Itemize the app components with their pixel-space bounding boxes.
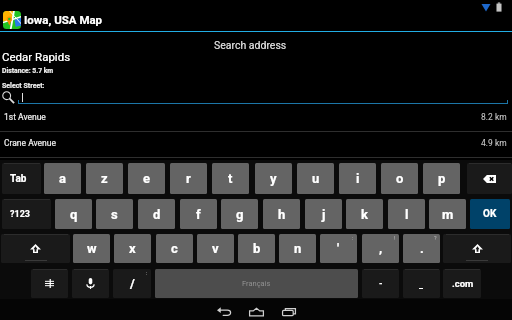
button[interactable]: Voice input [72,269,109,298]
staticText: w [87,241,97,256]
button[interactable]: 1st Avenue [0,104,512,129]
staticText: p [438,171,446,186]
staticText: Iowa, USA Map [24,13,103,26]
button[interactable]: i [339,163,376,194]
staticText: Cedar Rapids [2,50,71,63]
button[interactable]: Recent apps [272,301,305,320]
staticText: .com [452,278,474,289]
button[interactable]: y [255,163,292,194]
staticText: 8.2 km [481,112,507,122]
button[interactable]: .com [443,269,481,298]
staticText: : [146,270,148,276]
staticText: i [356,171,360,186]
staticText: u [312,171,320,186]
staticText: k [361,207,368,222]
staticText: d [153,207,161,222]
button[interactable]: r [170,163,207,194]
staticText: OK [483,208,497,220]
staticText: g [236,207,244,222]
staticText: r [186,171,191,186]
button[interactable]: Tab [2,163,41,194]
staticText: e [143,171,151,186]
staticText: m [442,207,454,222]
staticText: ? [434,235,437,241]
staticText: . [420,241,424,256]
staticText: Crane Avenue [4,138,56,148]
staticText: 4.9 km [481,138,507,148]
button[interactable]: Shift [443,234,511,263]
button[interactable]: v [197,234,234,263]
button[interactable]: , [362,234,399,263]
staticText: o [396,171,404,186]
staticText: - [379,278,383,289]
staticText: / [130,276,135,291]
button[interactable]: OK [470,199,510,229]
button[interactable]: - [362,269,399,298]
staticText: q [70,207,78,222]
staticText: f [196,207,201,222]
button[interactable]: Back [207,301,240,320]
button[interactable]: . [403,234,440,263]
button[interactable]: h [263,199,300,229]
staticText: n [294,241,302,256]
button[interactable]: ' [320,234,357,263]
button[interactable]: m [429,199,466,229]
staticText: j [322,207,326,222]
button[interactable]: ?123 [2,199,51,229]
button[interactable]: Crane Avenue [0,130,512,155]
button[interactable]: Switch keyboard [31,269,68,298]
button[interactable]: Français [155,269,358,298]
staticText: Distance: 5.7 km [2,67,54,75]
button[interactable]: j [305,199,342,229]
staticText: a [59,171,66,186]
button[interactable]: u [297,163,334,194]
staticText: , [379,241,383,256]
button[interactable]: s [96,199,133,229]
button[interactable]: d [138,199,175,229]
staticText: l [405,207,409,222]
button[interactable]: c [156,234,193,263]
staticText: ' [337,241,340,256]
staticText: ! [394,235,396,241]
button[interactable]: p [423,163,460,194]
button[interactable]: x [114,234,151,263]
button[interactable]: w [73,234,110,263]
button[interactable]: l [388,199,425,229]
button[interactable]: a [44,163,81,194]
button[interactable]: k [346,199,383,229]
button[interactable]: z [86,163,123,194]
button[interactable]: f [180,199,217,229]
button[interactable]: o [381,163,418,194]
staticText: 1st Avenue [4,112,46,122]
button[interactable]: / [113,269,151,298]
button[interactable] [18,90,508,105]
button[interactable]: g [221,199,258,229]
button[interactable]: Shift [1,234,70,263]
staticText: t [228,171,233,186]
staticText: c [171,241,178,256]
staticText: s [111,207,118,222]
button[interactable]: Delete [467,163,512,194]
staticText: ?123 [10,209,30,220]
staticText: Tab [10,173,27,185]
staticText: Select Street: [2,82,45,90]
button[interactable]: b [238,234,275,263]
staticText: b [253,241,261,256]
staticText: _ [419,280,424,291]
staticText: : [352,235,354,241]
staticText: y [270,171,277,186]
staticText: h [278,207,286,222]
button[interactable]: q [55,199,92,229]
button[interactable]: e [128,163,165,194]
staticText: Français [242,279,271,288]
button[interactable]: n [279,234,316,263]
staticText: z [101,171,108,186]
button[interactable]: Home [240,301,273,320]
staticText: x [129,241,136,256]
button[interactable]: _ [403,269,440,298]
staticText: Search address [214,39,287,51]
staticText: v [212,241,219,256]
button[interactable]: t [212,163,249,194]
